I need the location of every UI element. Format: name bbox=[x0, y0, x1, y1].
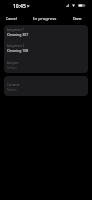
staticText: Cleaning 108 bbox=[7, 48, 29, 53]
staticText: Assignment 1 bbox=[7, 28, 25, 32]
staticText: Assignment 2 bbox=[7, 44, 25, 48]
button[interactable]: Comment bbox=[4, 83, 88, 92]
staticText: Select bbox=[7, 65, 17, 70]
staticText: Notes bbox=[7, 87, 17, 92]
button[interactable]: Done bbox=[68, 13, 92, 24]
button[interactable]: Assignee bbox=[4, 61, 88, 70]
button[interactable]: Assignment 2 bbox=[4, 44, 88, 53]
staticText: Cleaning 307 bbox=[7, 32, 29, 37]
staticText: Cancel bbox=[6, 16, 17, 21]
staticText: 10:45 bbox=[13, 3, 26, 10]
staticText: Assignee bbox=[7, 61, 19, 65]
button[interactable]: Assignment 1 bbox=[4, 28, 88, 37]
staticText: Done bbox=[73, 16, 82, 21]
staticText: Comment bbox=[7, 83, 20, 87]
button[interactable]: Cancel bbox=[0, 13, 22, 24]
staticText: In progress bbox=[33, 15, 57, 21]
